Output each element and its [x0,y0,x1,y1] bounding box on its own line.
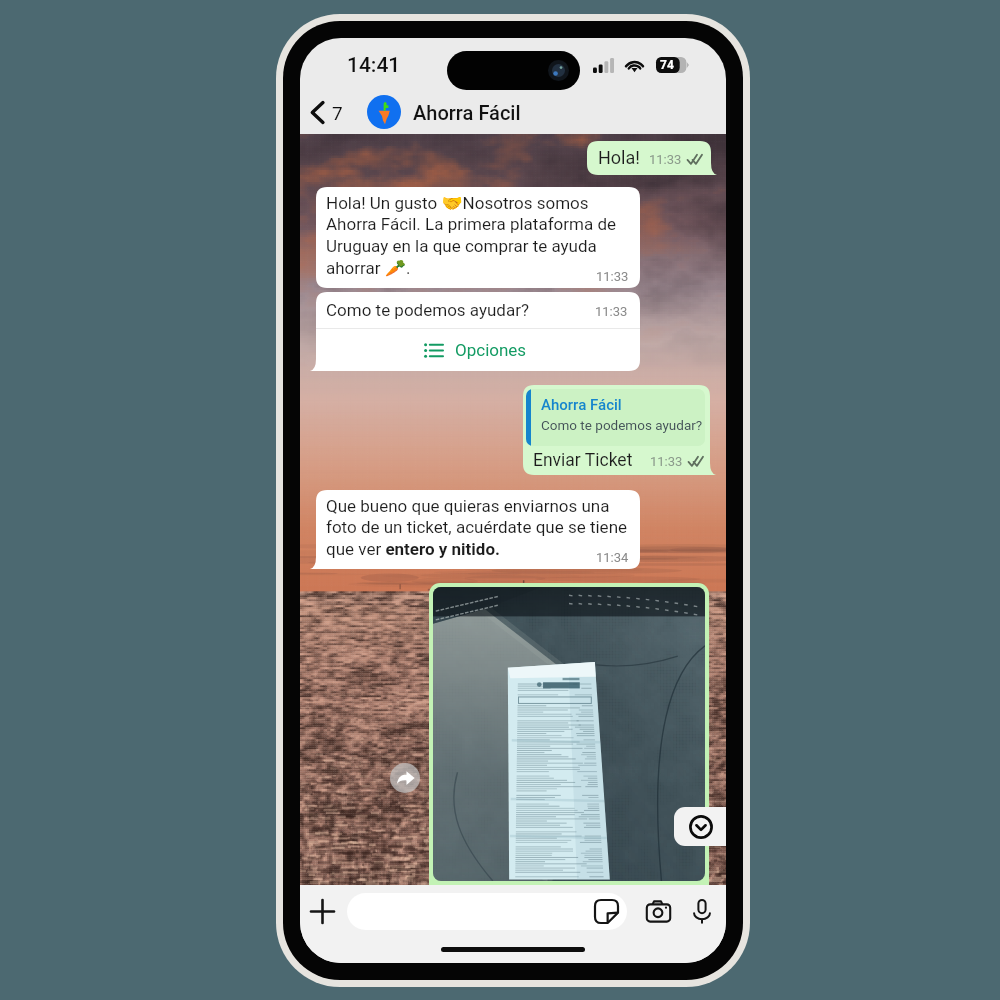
staticText: Que bueno que quieras enviarnos una foto… [326,496,629,560]
staticText: 11:33 [650,454,683,469]
button[interactable]: Ahorra Fácil [526,389,705,446]
staticText: Como te podemos ayudar? [541,417,703,433]
button[interactable]: Attach [305,894,339,928]
staticText: 11:33 [595,304,628,319]
staticText: Hola! Un gusto 🤝Nosotros somos Ahorra Fá… [326,193,629,279]
staticText: 74 [660,58,674,72]
staticText: 11:33 [649,152,682,167]
button[interactable] [347,893,627,930]
staticText: Enviar Ticket [533,450,633,471]
button[interactable]: Forward [390,763,420,793]
staticText: Hola! [598,147,640,168]
button[interactable]: Ahorra Fácil [367,93,726,131]
staticText: Como te podemos ayudar? [326,300,529,320]
staticText: 14:41 [347,53,401,78]
button[interactable]: Opciones [310,329,640,371]
staticText: Ahorra Fácil [541,396,622,414]
button[interactable]: Back, 7 unread chats [300,96,347,129]
staticText: 11:34 [596,550,629,565]
staticText: 11:33 [596,269,629,284]
staticText: Ahorra Fácil [413,101,521,124]
button[interactable]: Voice message [685,894,719,928]
button[interactable]: Photo of a receipt [429,583,709,885]
button[interactable]: Camera [641,894,675,928]
staticText: Opciones [455,340,527,360]
staticText: 7 [332,102,343,124]
button[interactable]: Scroll to bottom [674,807,726,846]
